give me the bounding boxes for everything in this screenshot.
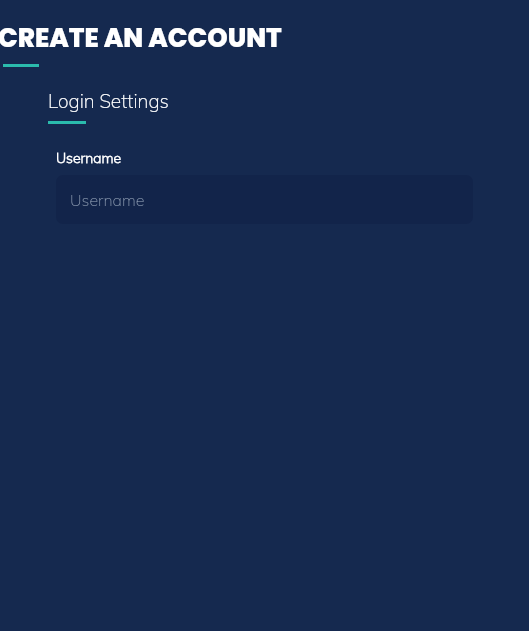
button[interactable]: Username xyxy=(56,175,473,224)
staticText: CREATE AN ACCOUNT xyxy=(0,20,282,56)
staticText: Username xyxy=(70,190,145,210)
staticText: Login Settings xyxy=(48,89,169,113)
staticText: Username xyxy=(56,149,122,167)
